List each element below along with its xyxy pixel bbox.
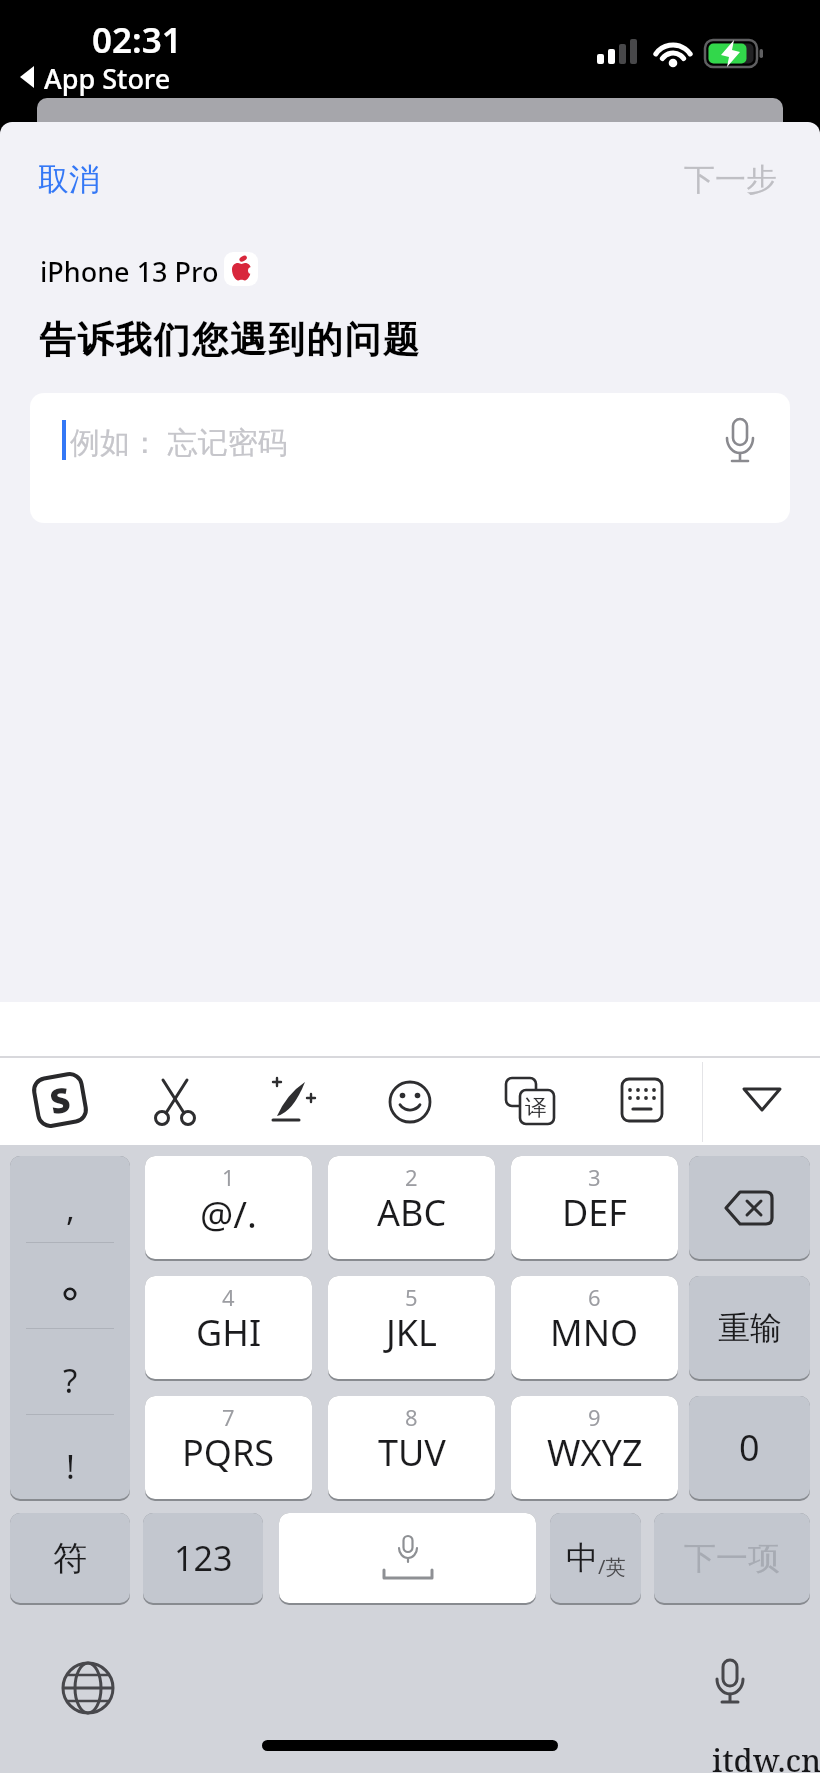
- staticText: ,: [66, 1186, 75, 1231]
- staticText: JKL: [386, 1308, 437, 1357]
- staticText: 中: [566, 1538, 598, 1578]
- staticText: itdw.cn: [712, 1739, 820, 1773]
- staticText: 例如： 忘记密码: [70, 421, 288, 462]
- button[interactable]: 5: [328, 1276, 495, 1379]
- staticText: 符: [53, 1537, 87, 1580]
- button[interactable]: 取消: [30, 150, 92, 189]
- staticText: DEF: [562, 1188, 627, 1237]
- staticText: 下一步: [684, 160, 777, 199]
- staticText: ?: [63, 1358, 78, 1403]
- staticText: 7: [222, 1402, 235, 1432]
- button[interactable]: 例如： 忘记密码: [30, 393, 790, 523]
- staticText: 02:31: [92, 16, 182, 64]
- staticText: 8: [405, 1402, 418, 1432]
- staticText: App Store: [44, 60, 171, 97]
- button[interactable]: 1: [145, 1156, 312, 1259]
- staticText: 下一项: [684, 1538, 780, 1578]
- staticText: GHI: [196, 1308, 262, 1357]
- staticText: TUV: [378, 1428, 446, 1477]
- staticText: 9: [588, 1402, 601, 1432]
- button[interactable]: 3: [511, 1156, 678, 1259]
- staticText: 告诉我们您遇到的问题: [38, 317, 420, 362]
- staticText: !: [66, 1444, 75, 1489]
- staticText: 重输: [718, 1308, 782, 1348]
- button[interactable]: 123: [143, 1513, 263, 1603]
- button[interactable]: 中: [550, 1513, 641, 1603]
- button[interactable]: [707, 1658, 753, 1716]
- staticText: 取消: [38, 160, 100, 199]
- button[interactable]: ,: [10, 1156, 130, 1499]
- button[interactable]: 4: [145, 1276, 312, 1379]
- button[interactable]: [689, 1156, 810, 1259]
- staticText: WXYZ: [547, 1428, 643, 1477]
- staticText: PQRS: [182, 1428, 275, 1477]
- button[interactable]: 6: [511, 1276, 678, 1379]
- button[interactable]: 重输: [689, 1276, 810, 1379]
- button[interactable]: 符: [10, 1513, 130, 1603]
- staticText: 4: [222, 1282, 235, 1312]
- button[interactable]: [58, 1658, 118, 1718]
- staticText: 123: [174, 1535, 233, 1581]
- button[interactable]: 0: [689, 1396, 810, 1499]
- staticText: 译: [525, 1094, 547, 1122]
- staticText: 3: [588, 1162, 601, 1192]
- button[interactable]: 8: [328, 1396, 495, 1499]
- staticText: 2: [405, 1162, 418, 1192]
- staticText: /英: [598, 1553, 626, 1580]
- staticText: S: [46, 1076, 74, 1124]
- staticText: ABC: [377, 1188, 447, 1237]
- button[interactable]: 2: [328, 1156, 495, 1259]
- staticText: iPhone 13 Pro: [40, 253, 219, 290]
- button[interactable]: S: [30, 1070, 90, 1130]
- staticText: MNO: [550, 1308, 639, 1357]
- staticText: @/.: [200, 1188, 257, 1238]
- staticText: 5: [405, 1282, 418, 1312]
- button[interactable]: 下一项: [654, 1513, 810, 1603]
- staticText: 1: [222, 1162, 235, 1192]
- button[interactable]: 下一步: [676, 150, 769, 189]
- staticText: 6: [588, 1282, 601, 1312]
- button[interactable]: 7: [145, 1396, 312, 1499]
- staticText: 0: [739, 1423, 760, 1472]
- button[interactable]: [279, 1513, 536, 1603]
- button[interactable]: 9: [511, 1396, 678, 1499]
